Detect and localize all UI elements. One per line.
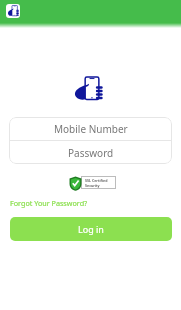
staticText: Mobile Number [54,122,128,136]
button[interactable]: Mobile Number [9,117,172,140]
button[interactable]: Password [9,141,172,164]
button[interactable]: App logo [6,4,20,18]
button[interactable]: Forgot Your Password? [10,198,88,208]
staticText: Password [68,146,114,160]
staticText: Security [85,183,100,188]
staticText: Forgot Your Password? [10,198,88,208]
staticText: Log in [78,223,104,235]
staticText: SSL Certified [85,178,108,183]
button[interactable]: Log in [10,217,172,241]
